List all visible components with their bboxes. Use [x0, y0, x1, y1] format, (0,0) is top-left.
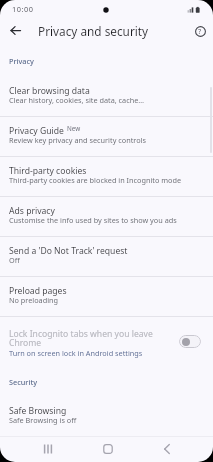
staticText: Review key privacy and security controls: [9, 135, 146, 145]
staticText: Safe Browsing is off: [9, 415, 77, 425]
button[interactable]: Privacy Guide: [0, 117, 213, 156]
staticText: Clear history, cookies, site data, cache…: [9, 95, 145, 105]
staticText: Send a 'Do Not Track' request: [9, 245, 128, 257]
button[interactable]: Recent apps: [37, 438, 59, 460]
button[interactable]: Ads privacy: [0, 197, 213, 236]
button[interactable]: Preload pages: [0, 277, 213, 316]
staticText: Turn on screen lock in Android settings: [9, 348, 143, 358]
button[interactable]: Clear browsing data: [0, 77, 213, 116]
button[interactable]: Send a 'Do Not Track' request: [0, 237, 213, 276]
staticText: Security: [9, 377, 38, 387]
staticText: Privacy Guide: [9, 125, 64, 137]
staticText: Customise the info used by sites to show…: [9, 215, 177, 225]
staticText: 10:00: [12, 4, 34, 14]
staticText: Safe Browsing: [9, 405, 67, 417]
button[interactable]: Back: [156, 438, 178, 460]
staticText: Third-party cookies: [9, 165, 87, 177]
staticText: ?: [198, 26, 202, 36]
button[interactable]: Lock Incognito tabs when you leave Chrom…: [0, 317, 213, 365]
staticText: Third-party cookies are blocked in Incog…: [9, 175, 182, 185]
button[interactable]: Third-party cookies: [0, 157, 213, 196]
staticText: Lock Incognito tabs when you leave Chrom…: [9, 328, 179, 349]
button[interactable]: Help: [191, 22, 209, 40]
button[interactable]: Back: [3, 18, 28, 43]
staticText: Privacy: [9, 56, 34, 66]
staticText: Ads privacy: [9, 205, 55, 217]
staticText: No preloading: [9, 295, 59, 305]
staticText: Off: [9, 255, 20, 265]
staticText: Privacy and security: [38, 23, 149, 39]
staticText: Clear browsing data: [9, 85, 90, 97]
staticText: New: [67, 124, 81, 133]
button[interactable]: Safe Browsing: [0, 397, 213, 436]
button[interactable]: Home: [97, 438, 119, 460]
staticText: Preload pages: [9, 285, 67, 297]
